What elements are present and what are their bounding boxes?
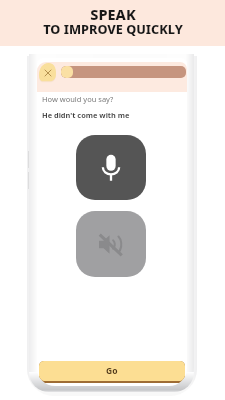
button[interactable]: Close — [39, 63, 56, 82]
staticText: TO IMPROVE QUICKLY — [43, 20, 183, 37]
staticText: How would you say? — [42, 94, 114, 104]
button[interactable]: Go — [39, 361, 185, 381]
button[interactable]: Record — [76, 135, 146, 200]
staticText: SPEAK — [90, 4, 136, 24]
button[interactable]: Mute — [76, 211, 146, 277]
staticText: Go — [106, 365, 118, 377]
staticText: He didn't come with me — [42, 110, 130, 120]
